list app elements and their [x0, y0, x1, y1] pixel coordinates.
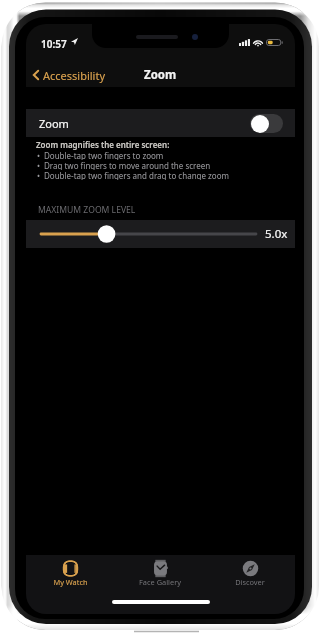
staticText: Face Gallery: [139, 577, 181, 587]
button[interactable]: [41, 224, 256, 244]
staticText: Double-tap two fingers to zoom: [44, 150, 164, 160]
staticText: Zoom: [39, 116, 69, 131]
staticText: 10:57: [41, 37, 67, 51]
button[interactable]: Discover tab: [205, 555, 295, 600]
staticText: Drag two fingers to move around the scre…: [44, 160, 211, 170]
staticText: 5.0x: [265, 226, 288, 242]
button[interactable]: Accessibility: [33, 64, 106, 86]
staticText: Double-tap two fingers and drag to chang…: [44, 170, 230, 180]
button[interactable]: Face Gallery tab: [115, 555, 205, 600]
staticText: Accessibility: [43, 68, 106, 83]
button[interactable]: Zoom: [26, 109, 295, 137]
button[interactable]: My Watch tab: [26, 555, 115, 600]
staticText: •: [37, 170, 41, 180]
staticText: My Watch: [53, 577, 88, 587]
staticText: Discover: [235, 577, 265, 587]
staticText: •: [37, 160, 41, 170]
staticText: MAXIMUM ZOOM LEVEL: [38, 204, 136, 216]
staticText: Zoom: [144, 67, 177, 83]
staticText: •: [37, 150, 41, 160]
staticText: Zoom magnifies the entire screen:: [36, 139, 170, 150]
